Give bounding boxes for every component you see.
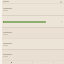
button[interactable]: Tab 1 — [0, 61, 22, 64]
button[interactable]: Highlighted item — [0, 16, 64, 27]
button[interactable] — [0, 4, 64, 15]
button[interactable] — [0, 50, 64, 60]
button[interactable] — [0, 39, 64, 49]
button[interactable] — [0, 28, 64, 38]
button[interactable]: App bar — [0, 0, 64, 3]
